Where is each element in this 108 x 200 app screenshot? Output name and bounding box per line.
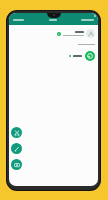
button[interactable]: Chats tab: [80, 17, 95, 23]
button[interactable]: Broadcast: [11, 127, 22, 138]
button[interactable]: New chat: [11, 143, 22, 154]
button[interactable]: Camera: [11, 159, 22, 170]
button[interactable]: [13, 50, 95, 62]
button[interactable]: [13, 28, 95, 39]
button[interactable]: Status tab: [48, 17, 58, 23]
button[interactable]: Settings tab: [12, 17, 25, 23]
